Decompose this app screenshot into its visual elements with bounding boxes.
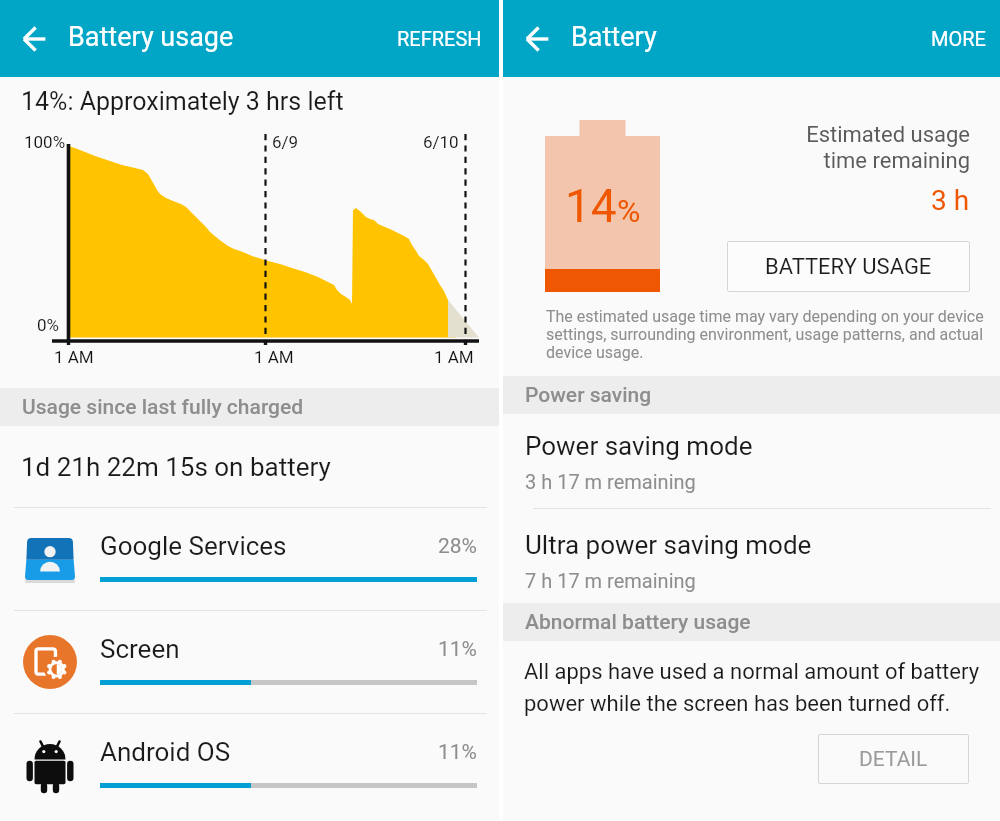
staticText: 1 AM bbox=[434, 347, 474, 367]
staticText: Ultra power saving mode bbox=[525, 530, 812, 560]
button[interactable]: Google Services bbox=[0, 508, 499, 610]
staticText: Abnormal battery usage bbox=[525, 610, 751, 635]
staticText: 1d 21h 22m 15s on battery bbox=[21, 452, 331, 482]
staticText: 14%: Approximately 3 hrs left bbox=[21, 87, 344, 116]
staticText: Estimated usage time remaining bbox=[806, 122, 970, 173]
staticText: 6/9 bbox=[272, 132, 299, 152]
staticText: BATTERY USAGE bbox=[765, 254, 932, 280]
staticText: 7 h 17 m remaining bbox=[525, 569, 696, 592]
button[interactable]: BATTERY USAGE bbox=[727, 241, 970, 292]
staticText: 100% bbox=[24, 132, 66, 152]
staticText: 11% bbox=[438, 637, 477, 662]
staticText: % bbox=[617, 192, 641, 230]
button[interactable]: Back bbox=[509, 11, 564, 66]
staticText: 3 h bbox=[931, 184, 970, 217]
staticText: MORE bbox=[931, 27, 986, 50]
staticText: 3 h 17 m remaining bbox=[525, 470, 696, 493]
button[interactable]: Power saving mode bbox=[503, 417, 1000, 508]
staticText: 6/10 bbox=[423, 132, 459, 152]
staticText: Battery bbox=[571, 21, 657, 53]
staticText: 1 AM bbox=[254, 347, 294, 367]
staticText: 0% bbox=[37, 315, 60, 335]
staticText: REFRESH bbox=[397, 27, 482, 50]
staticText: 1 AM bbox=[54, 347, 94, 367]
button[interactable]: MORE bbox=[907, 0, 1000, 77]
staticText: 28% bbox=[438, 534, 477, 559]
button[interactable]: DETAIL bbox=[818, 734, 969, 784]
staticText: DETAIL bbox=[859, 747, 928, 772]
staticText: Usage since last fully charged bbox=[22, 395, 304, 420]
staticText: Google Services bbox=[100, 531, 287, 561]
staticText: Battery usage bbox=[68, 21, 234, 53]
staticText: Power saving mode bbox=[525, 431, 753, 461]
staticText: Power saving bbox=[525, 383, 652, 408]
staticText: All apps have used a normal amount of ba… bbox=[524, 659, 999, 716]
staticText: 14 bbox=[565, 179, 617, 233]
staticText: Android OS bbox=[100, 737, 231, 767]
button[interactable]: Back bbox=[6, 11, 61, 66]
button[interactable]: Screen bbox=[0, 611, 499, 713]
button[interactable]: REFRESH bbox=[373, 0, 499, 77]
staticText: The estimated usage time may vary depend… bbox=[546, 307, 996, 362]
staticText: 11% bbox=[438, 740, 477, 765]
staticText: Screen bbox=[100, 634, 180, 664]
button[interactable]: Ultra power saving mode bbox=[503, 516, 1000, 603]
button[interactable]: Android OS bbox=[0, 714, 499, 816]
